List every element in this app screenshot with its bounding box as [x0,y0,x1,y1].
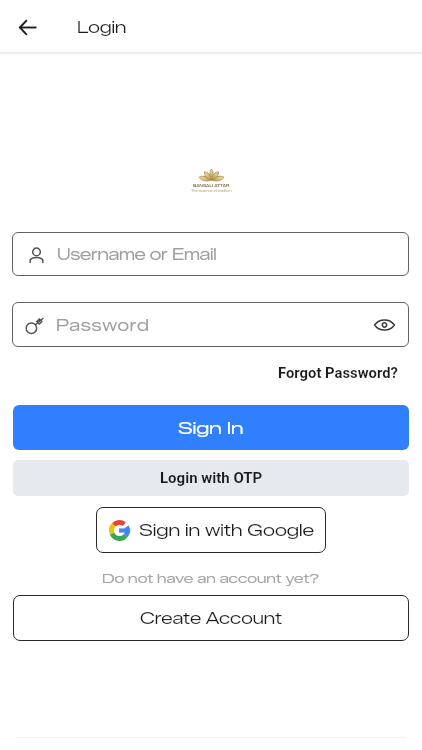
staticText: Login with OTP [160,469,263,487]
button[interactable]: Login with OTP [13,460,409,496]
staticText: Sign in with Google [139,520,315,540]
staticText: Username or Email [57,245,217,264]
button[interactable]: Username or Email [12,232,409,276]
staticText: Create Account [140,609,282,628]
button[interactable]: Show password [365,306,403,344]
staticText: Do not have an account yet? [102,570,320,586]
staticText: The essence of tradition [191,189,232,193]
button[interactable]: Sign In [13,405,409,450]
button[interactable]: Forgot Password? [277,363,399,382]
staticText: BANSALI ATTAR [193,183,230,188]
button[interactable]: Sign in with Google [96,507,326,553]
button[interactable]: Password [12,302,409,347]
button[interactable]: Create Account [13,595,409,641]
staticText: Sign In [178,417,244,438]
button[interactable]: Back [8,7,48,47]
staticText: Password [56,316,150,335]
staticText: Login [77,18,127,37]
